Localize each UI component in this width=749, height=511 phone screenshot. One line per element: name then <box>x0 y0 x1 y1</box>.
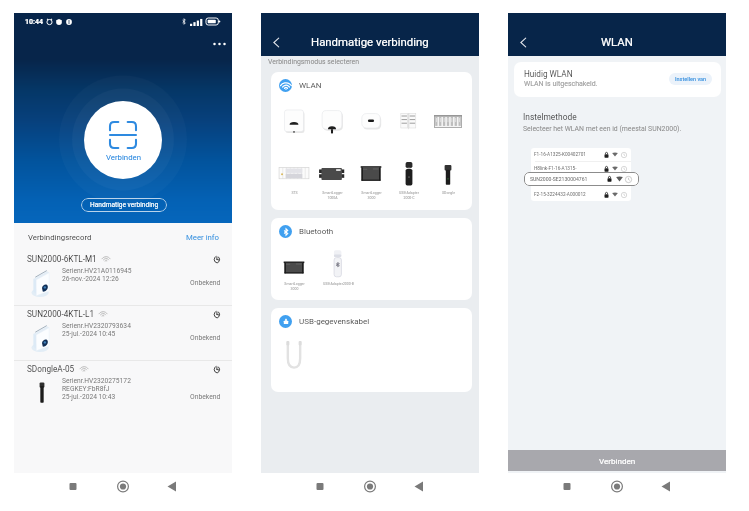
staticText: Onbekend <box>190 279 221 287</box>
staticText: USB-Adapter2000-B <box>323 282 354 286</box>
button[interactable]: Instellen van <box>669 73 712 85</box>
button[interactable]: WLAN <box>271 72 472 210</box>
staticText: Handmatige verbinding <box>90 201 159 209</box>
button[interactable]: History <box>211 363 223 375</box>
staticText: SDongle <box>442 191 455 195</box>
staticText: Verbinden <box>106 153 141 162</box>
staticText: Instelmethode <box>523 112 577 122</box>
staticText: Onbekend <box>190 393 221 401</box>
button[interactable]: Handmatige verbinding <box>81 198 167 212</box>
staticText: Instellen van <box>675 76 707 82</box>
staticText: WLAN <box>601 35 633 48</box>
button[interactable]: Meer info <box>186 233 220 242</box>
staticText: USB-gegevenskabel <box>299 317 370 326</box>
staticText: Huidig WLAN <box>524 69 573 79</box>
staticText: Serienr.HV2320793634 <box>62 322 131 330</box>
button[interactable]: Back <box>512 31 534 53</box>
staticText: Verbindingsrecord <box>28 233 92 242</box>
staticText: F2-15-3224432-A000012 <box>534 192 586 198</box>
button[interactable]: Bluetooth <box>271 218 472 300</box>
button[interactable]: History <box>211 253 223 265</box>
button[interactable]: More options <box>209 34 229 54</box>
button[interactable]: F1-16-A1325-K00402701 <box>531 148 631 161</box>
staticText: 25-jul.-2024 10:45 <box>62 330 116 338</box>
staticText: Serienr.HV21A0116945 <box>62 267 132 275</box>
button[interactable]: H8link-F1-16-A1315- <box>531 162 631 175</box>
staticText: SUN2000-SE2130004761 <box>530 176 588 182</box>
staticText: F1-16-A1325-K00402701 <box>534 152 586 158</box>
staticText: WLAN <box>299 81 322 90</box>
button[interactable]: F2-15-3224432-A000012 <box>531 188 631 201</box>
staticText: SUN2000-4KTL-L1 <box>27 309 94 319</box>
staticText: H8link-F1-16-A1315- <box>534 166 577 172</box>
button[interactable]: USB-gegevenskabel <box>271 308 472 392</box>
staticText: Onbekend <box>190 334 221 342</box>
button[interactable]: SUN2000-6KTL-M1 <box>14 251 232 305</box>
staticText: SmartLogger 1000A <box>322 191 343 200</box>
button[interactable]: Verbinden <box>508 450 726 471</box>
staticText: SmartLogger 3000 <box>361 191 382 200</box>
staticText: 26-nov.-2024 12:26 <box>62 275 119 283</box>
staticText: Handmatige verbinding <box>311 35 429 48</box>
staticText: Verbinden <box>599 456 636 465</box>
staticText: SUN2000-6KTL-M1 <box>27 254 97 264</box>
staticText: STS <box>291 191 298 195</box>
staticText: SDongleA-05 <box>27 364 75 374</box>
button[interactable]: SDongleA-05 <box>14 361 232 423</box>
staticText: Selecteer het WLAN met een id (meestal S… <box>523 125 682 133</box>
staticText: Verbindingsmodus selecteren <box>268 58 360 66</box>
staticText: USB-Adapter 2000-C <box>399 191 419 200</box>
staticText: 10:44 <box>25 18 44 26</box>
staticText: Meer info <box>186 233 220 242</box>
staticText: Bluetooth <box>299 227 334 236</box>
button[interactable]: Back <box>265 31 287 53</box>
button[interactable]: SUN2000-4KTL-L1 <box>14 306 232 360</box>
button[interactable]: Verbinden <box>84 101 162 179</box>
staticText: SmartLogger 3000 <box>284 282 305 291</box>
button[interactable]: SUN2000-SE2130004761 <box>524 172 639 186</box>
staticText: WLAN is uitgeschakeld. <box>524 80 598 88</box>
button[interactable]: History <box>211 308 223 320</box>
staticText: 25-jul.-2024 10:43 <box>62 393 116 401</box>
staticText: Serienr.HV2320275172 <box>62 377 131 385</box>
staticText: REGKEY:FbR8fJ <box>62 385 110 393</box>
